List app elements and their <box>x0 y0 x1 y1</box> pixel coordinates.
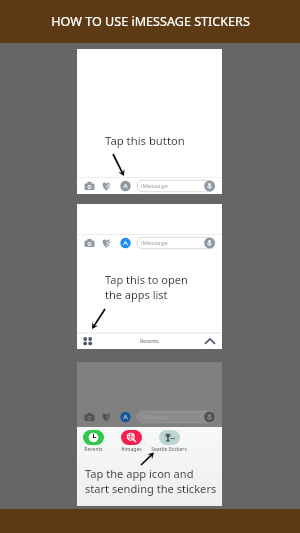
staticText: Tap this button <box>105 133 185 148</box>
staticText: Tap this to open the apps list <box>105 272 188 302</box>
staticText: iMessage <box>141 413 168 421</box>
staticText: Seattle Stickers <box>151 446 187 453</box>
staticText: Recents <box>84 446 103 453</box>
staticText: iMessage <box>141 239 168 247</box>
staticText: Recents <box>140 338 159 345</box>
button[interactable]: Seattle Stickers <box>149 430 189 453</box>
staticText: HOW TO USE iMESSAGE STICKERS <box>51 13 250 30</box>
staticText: #images <box>121 446 142 453</box>
staticText: Tap the app icon and start sending the s… <box>85 466 217 496</box>
staticText: iMessage <box>141 182 168 190</box>
button[interactable]: Recents <box>73 430 113 453</box>
button[interactable]: #images <box>111 430 151 453</box>
